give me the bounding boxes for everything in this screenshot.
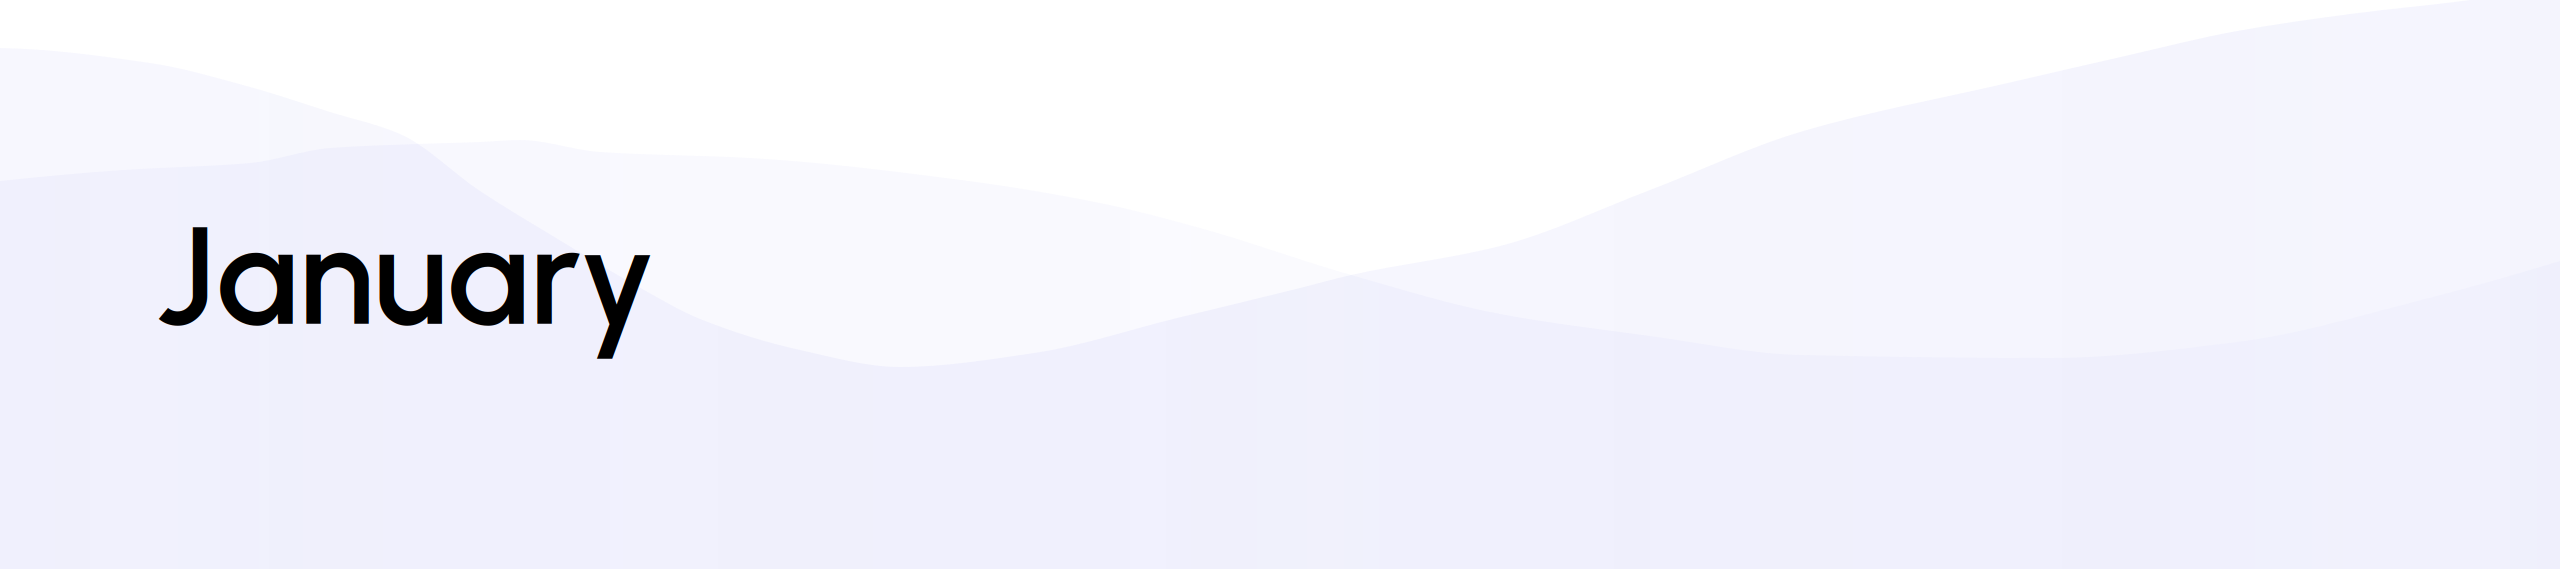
- staticText: January: [156, 192, 656, 358]
